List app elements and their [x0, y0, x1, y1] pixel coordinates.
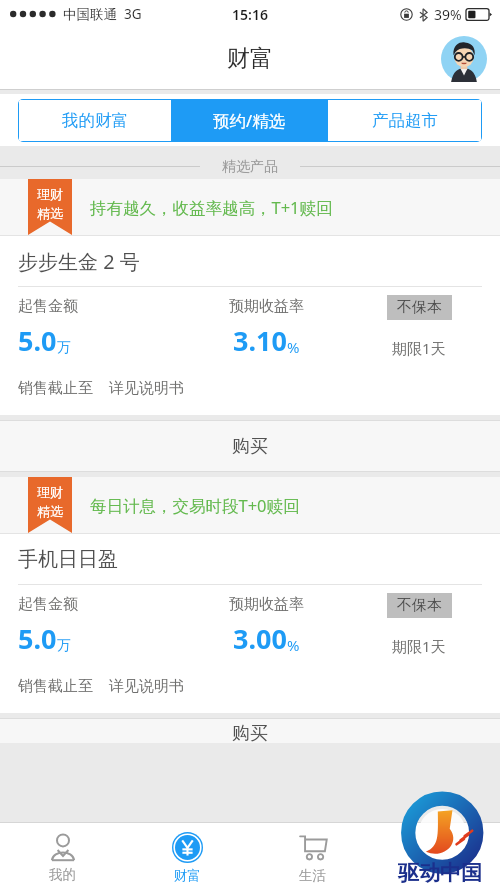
staticText: 理财 [37, 484, 63, 500]
button[interactable]: 我的 [0, 823, 125, 889]
staticText: 理财 [37, 186, 63, 202]
button[interactable]: 购买 [0, 719, 500, 743]
staticText: 购买 [232, 435, 268, 458]
staticText: 中 [440, 860, 461, 886]
staticText: 我的财富 [62, 110, 128, 131]
staticText: 购买 [232, 722, 268, 743]
staticText: 3.00 [233, 620, 287, 657]
staticText: 3G [124, 5, 142, 23]
staticText: 财富 [227, 44, 273, 73]
staticText: 不保本 [397, 596, 442, 615]
staticText: 销售截止至 [18, 379, 93, 398]
staticText: 销售截止至 [18, 677, 93, 696]
staticText: 预约/精选 [213, 109, 286, 132]
staticText: % [287, 337, 300, 357]
staticText: 精选 [37, 503, 63, 519]
staticText: 产品超市 [372, 110, 438, 131]
button[interactable]: 预约/精选 [172, 99, 327, 142]
staticText: 起售金额 [18, 595, 78, 614]
staticText: 我的 [49, 866, 76, 883]
staticText: 精选 [37, 205, 63, 221]
staticText: 手机日日盈 [18, 547, 118, 572]
staticText: 中国联通 [63, 6, 117, 23]
staticText: 期限1天 [392, 338, 446, 358]
button[interactable]: 产品超市 [328, 100, 481, 141]
staticText: 步步生金 2 号 [18, 248, 140, 275]
staticText: 15:16 [232, 5, 268, 24]
staticText: 万 [57, 339, 71, 357]
staticText: 财富 [174, 867, 201, 884]
button[interactable]: 购买 [0, 421, 500, 471]
button[interactable]: 持有越久，收益率越高，T+1赎回 [0, 179, 500, 415]
staticText: % [287, 635, 300, 655]
staticText: 3.10 [233, 322, 287, 359]
staticText: 动 [419, 860, 440, 886]
staticText: 预期收益率 [229, 297, 304, 316]
staticText: 详见说明书 [109, 379, 184, 398]
button[interactable]: 我的财富 [19, 100, 171, 141]
staticText: 5.0 [18, 322, 57, 359]
staticText: 每日计息，交易时段T+0赎回 [90, 494, 300, 517]
button[interactable]: 每日计息，交易时段T+0赎回 [0, 477, 500, 713]
staticText: 期限1天 [392, 636, 446, 656]
staticText: 持有越久，收益率越高，T+1赎回 [90, 196, 333, 219]
staticText: 详见说明书 [109, 677, 184, 696]
staticText: 起售金额 [18, 297, 78, 316]
staticText: 39% [434, 5, 462, 24]
staticText: 国 [461, 860, 482, 886]
button[interactable]: 生活 [250, 823, 375, 889]
staticText: 精选产品 [222, 158, 278, 176]
staticText: 万 [57, 637, 71, 655]
staticText: 驱 [398, 860, 419, 886]
button[interactable]: Profile [440, 35, 488, 83]
staticText: 生活 [299, 867, 326, 884]
staticText: 预期收益率 [229, 595, 304, 614]
button[interactable]: 财富 [125, 823, 250, 889]
staticText: 不保本 [397, 298, 442, 317]
staticText: 5.0 [18, 620, 57, 657]
